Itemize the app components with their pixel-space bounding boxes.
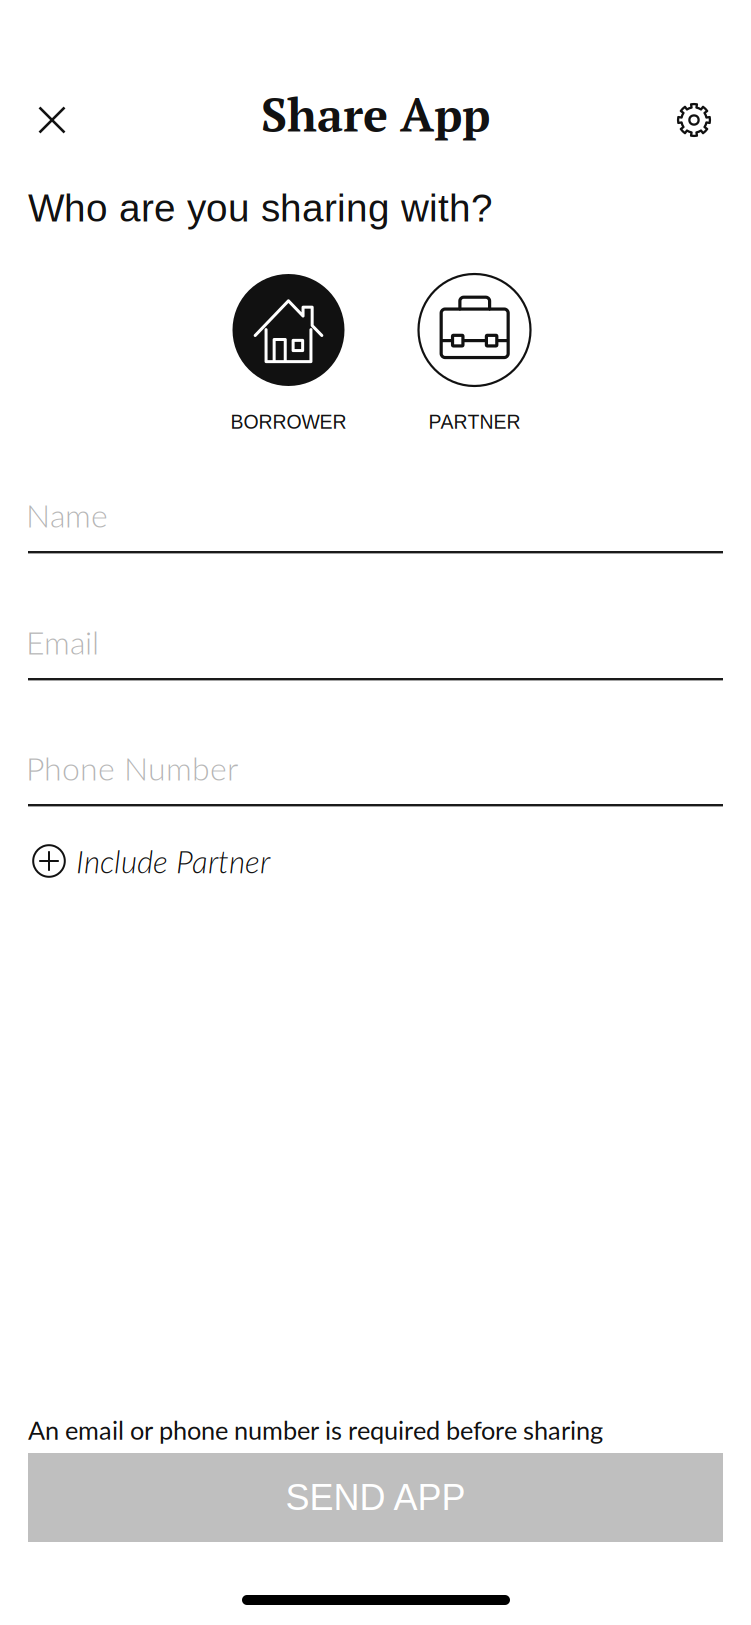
staticText: Email — [26, 623, 99, 661]
button[interactable]: Include Partner — [32, 835, 362, 887]
button[interactable]: SEND APP — [28, 1453, 723, 1542]
button[interactable]: BORROWER — [230, 274, 346, 439]
staticText: An email or phone number is required bef… — [28, 1415, 603, 1445]
staticText: BORROWER — [230, 411, 346, 433]
button[interactable]: Phone Number — [28, 742, 723, 838]
staticText: Share App — [261, 83, 490, 145]
staticText: Who are you sharing with? — [28, 186, 493, 230]
staticText: Phone Number — [26, 749, 238, 787]
staticText: PARTNER — [428, 411, 520, 433]
button[interactable]: PARTNER — [418, 274, 530, 439]
staticText: Name — [26, 496, 108, 534]
staticText: Include Partner — [76, 842, 270, 880]
button[interactable]: Email — [28, 616, 723, 712]
button[interactable]: Close — [16, 84, 88, 156]
button[interactable]: Name — [28, 489, 723, 585]
staticText: SEND APP — [285, 1477, 465, 1518]
button[interactable]: Settings — [658, 84, 730, 156]
